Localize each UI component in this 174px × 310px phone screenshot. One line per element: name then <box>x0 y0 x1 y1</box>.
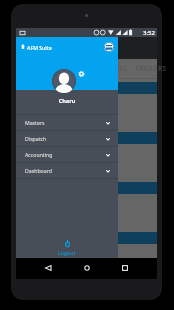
staticText: Logout <box>58 249 76 256</box>
staticText: AFM Suite <box>27 44 52 51</box>
button[interactable]: LORRIES <box>96 59 130 78</box>
button[interactable]: Gopal <box>16 232 157 280</box>
button[interactable]: Salman <box>16 82 157 130</box>
button[interactable]: Logout <box>16 240 118 256</box>
staticText: Charu <box>16 97 118 105</box>
button[interactable]: Recent apps <box>117 260 133 276</box>
staticText: No <box>20 147 29 155</box>
button[interactable]: Profile picture <box>52 69 76 93</box>
staticText: Dispatch <box>25 135 47 142</box>
staticText: Accounting <box>25 151 53 158</box>
button[interactable]: Masters <box>16 115 118 130</box>
staticText: Dashboard <box>25 167 52 174</box>
button[interactable]: Account <box>104 42 114 52</box>
button[interactable]: Settings <box>78 70 85 78</box>
button[interactable]: Back <box>40 260 56 276</box>
button[interactable]: Kumar <box>16 132 157 180</box>
staticText: 1 <box>20 256 24 264</box>
button[interactable]: Dispatch <box>16 131 118 146</box>
staticText: Kumar <box>20 133 43 143</box>
staticText: 3:52 <box>143 29 155 37</box>
button[interactable]: Accounting <box>16 147 118 162</box>
button[interactable]: David <box>16 182 157 230</box>
staticText: Masters <box>25 119 45 126</box>
button[interactable]: Dashboard <box>16 163 118 178</box>
staticText: Salman <box>20 83 45 93</box>
button[interactable]: TRAILERS <box>134 59 168 78</box>
staticText: 3 <box>20 156 24 164</box>
button[interactable]: Home <box>79 260 95 276</box>
staticText: LORRIES <box>99 64 128 73</box>
staticText: TRAILERS <box>135 64 167 73</box>
